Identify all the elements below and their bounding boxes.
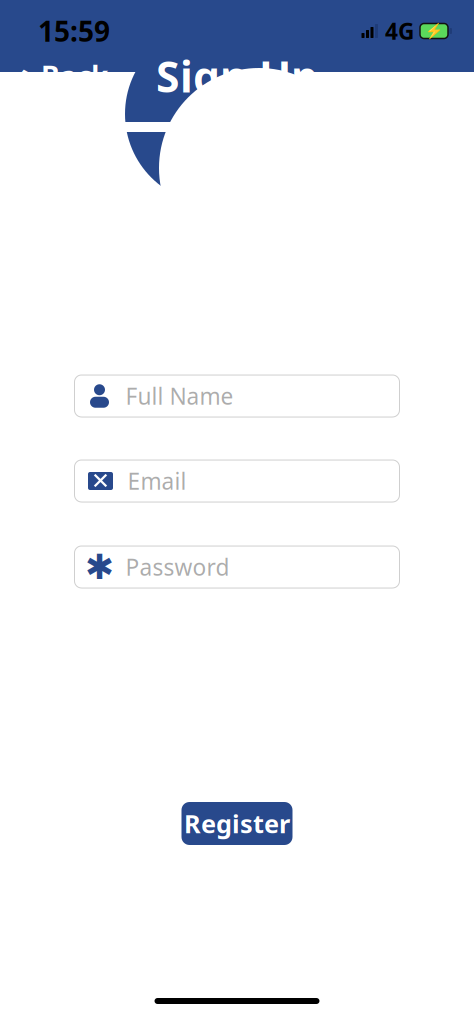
staticText: ⚡ bbox=[425, 23, 443, 39]
staticText: Password bbox=[125, 552, 229, 582]
staticText: ‹ bbox=[12, 41, 31, 111]
staticText: ✕ bbox=[91, 468, 110, 494]
button[interactable]: ✱ bbox=[74, 546, 399, 588]
button[interactable]: Full Name bbox=[74, 375, 399, 417]
staticText: Sign Up bbox=[156, 48, 318, 104]
staticText: Email bbox=[127, 466, 186, 496]
staticText: Register bbox=[184, 807, 290, 840]
button[interactable]: Register bbox=[181, 802, 292, 845]
staticText: Full Name bbox=[125, 381, 233, 411]
button[interactable]: ✕ bbox=[74, 460, 399, 502]
button[interactable]: ‹ bbox=[0, 54, 118, 98]
staticText: Back bbox=[41, 57, 108, 95]
staticText: 4G bbox=[385, 16, 414, 46]
staticText: 15:59 bbox=[38, 12, 110, 50]
staticText: ✱ bbox=[85, 547, 114, 587]
